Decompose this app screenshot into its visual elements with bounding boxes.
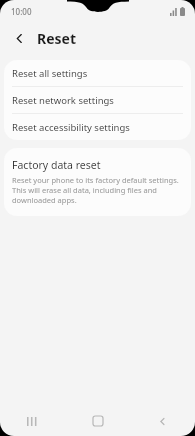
- staticText: Reset network settings: [12, 94, 114, 107]
- staticText: 10:00: [11, 6, 32, 17]
- staticText: Reset: [37, 29, 77, 48]
- button[interactable]: Reset all settings: [4, 60, 191, 86]
- button[interactable]: Recents: [0, 406, 65, 436]
- staticText: Reset all settings: [12, 67, 88, 80]
- button[interactable]: Factory data reset: [4, 148, 191, 216]
- staticText: Reset your phone to its factory default …: [12, 175, 181, 205]
- button[interactable]: Back: [130, 406, 195, 436]
- button[interactable]: Reset network settings: [4, 87, 191, 113]
- staticText: Factory data reset: [12, 158, 101, 172]
- button[interactable]: Reset accessibility settings: [4, 114, 191, 140]
- staticText: Reset accessibility settings: [12, 121, 130, 134]
- button[interactable]: Home: [65, 406, 130, 436]
- button[interactable]: Back: [7, 26, 31, 50]
